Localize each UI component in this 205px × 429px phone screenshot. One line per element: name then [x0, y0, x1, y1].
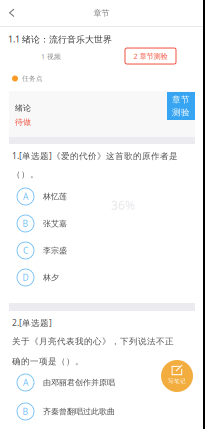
- staticText: 任务点: [22, 74, 43, 83]
- staticText: （）。: [12, 169, 39, 180]
- button[interactable]: A: [0, 369, 186, 396]
- staticText: 由邓丽君创作并原唱: [43, 377, 115, 388]
- staticText: C: [23, 245, 28, 256]
- staticText: 待做: [15, 117, 31, 127]
- staticText: 林夕: [43, 272, 59, 283]
- staticText: 测验: [172, 107, 190, 118]
- button[interactable]: B: [0, 398, 186, 425]
- staticText: 张艾嘉: [43, 218, 67, 229]
- staticText: A: [23, 377, 28, 388]
- button[interactable]: 章节: [167, 92, 195, 120]
- staticText: A: [23, 191, 28, 202]
- staticText: 1.1 绪论：流行音乐大世界: [8, 33, 112, 45]
- staticText: 李宗盛: [43, 245, 67, 256]
- button[interactable]: 写笔记: [161, 360, 193, 392]
- staticText: 章节: [93, 8, 109, 18]
- button[interactable]: D: [0, 264, 186, 291]
- staticText: 绪论: [15, 103, 31, 113]
- button[interactable]: B: [0, 210, 186, 237]
- staticText: 林忆莲: [43, 191, 67, 202]
- staticText: 36%: [111, 197, 135, 213]
- button[interactable]: 1 视频: [26, 49, 76, 64]
- staticText: 关于《月亮代表我的心》，下列说法不正: [12, 336, 174, 347]
- button[interactable]: C: [0, 237, 186, 264]
- staticText: 章节: [172, 94, 190, 105]
- staticText: B: [22, 218, 28, 229]
- staticText: 确的一项是（）。: [12, 356, 84, 367]
- staticText: 1 视频: [41, 52, 61, 61]
- staticText: 2.[单选题]: [12, 317, 52, 329]
- staticText: D: [22, 272, 28, 283]
- staticText: 齐秦曾翻唱过此歌曲: [43, 406, 115, 417]
- button[interactable]: 返回: [0, 0, 32, 26]
- button[interactable]: A: [0, 183, 186, 210]
- staticText: 写笔记: [168, 377, 186, 385]
- staticText: 2 章节测验: [133, 51, 167, 61]
- staticText: B: [22, 406, 28, 417]
- staticText: 1.[单选题]《爱的代价》这首歌的原作者是: [12, 150, 178, 162]
- button[interactable]: 2 章节测验: [125, 48, 176, 64]
